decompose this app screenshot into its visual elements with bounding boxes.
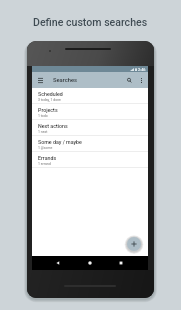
button[interactable]: Errands: [32, 152, 148, 168]
button[interactable]: Home: [84, 256, 96, 270]
button[interactable]: More options: [135, 74, 147, 86]
button[interactable]: Open navigation drawer: [34, 74, 46, 86]
button[interactable]: Next actions: [32, 120, 148, 136]
staticText: 1 errand: [38, 162, 51, 166]
staticText: Projects: [38, 107, 58, 113]
button[interactable]: Back: [52, 256, 64, 270]
button[interactable]: Search: [123, 74, 135, 86]
staticText: Searches: [53, 77, 78, 84]
staticText: 1 next: [38, 130, 48, 134]
staticText: Scheduled: [38, 91, 63, 97]
staticText: 3 today, 1 done: [38, 98, 61, 102]
button[interactable]: Add search: [127, 237, 141, 251]
staticText: 1 @some: [38, 146, 53, 150]
staticText: 2:46: [138, 67, 146, 71]
staticText: Some day / maybe: [38, 139, 82, 145]
button[interactable]: Projects: [32, 104, 148, 120]
staticText: Next actions: [38, 123, 68, 129]
button[interactable]: Recent apps: [115, 256, 127, 270]
button[interactable]: Scheduled: [32, 88, 148, 104]
staticText: 1 todo: [38, 114, 48, 118]
staticText: Define custom searches: [33, 16, 148, 28]
staticText: Errands: [38, 155, 57, 161]
button[interactable]: Some day / maybe: [32, 136, 148, 152]
